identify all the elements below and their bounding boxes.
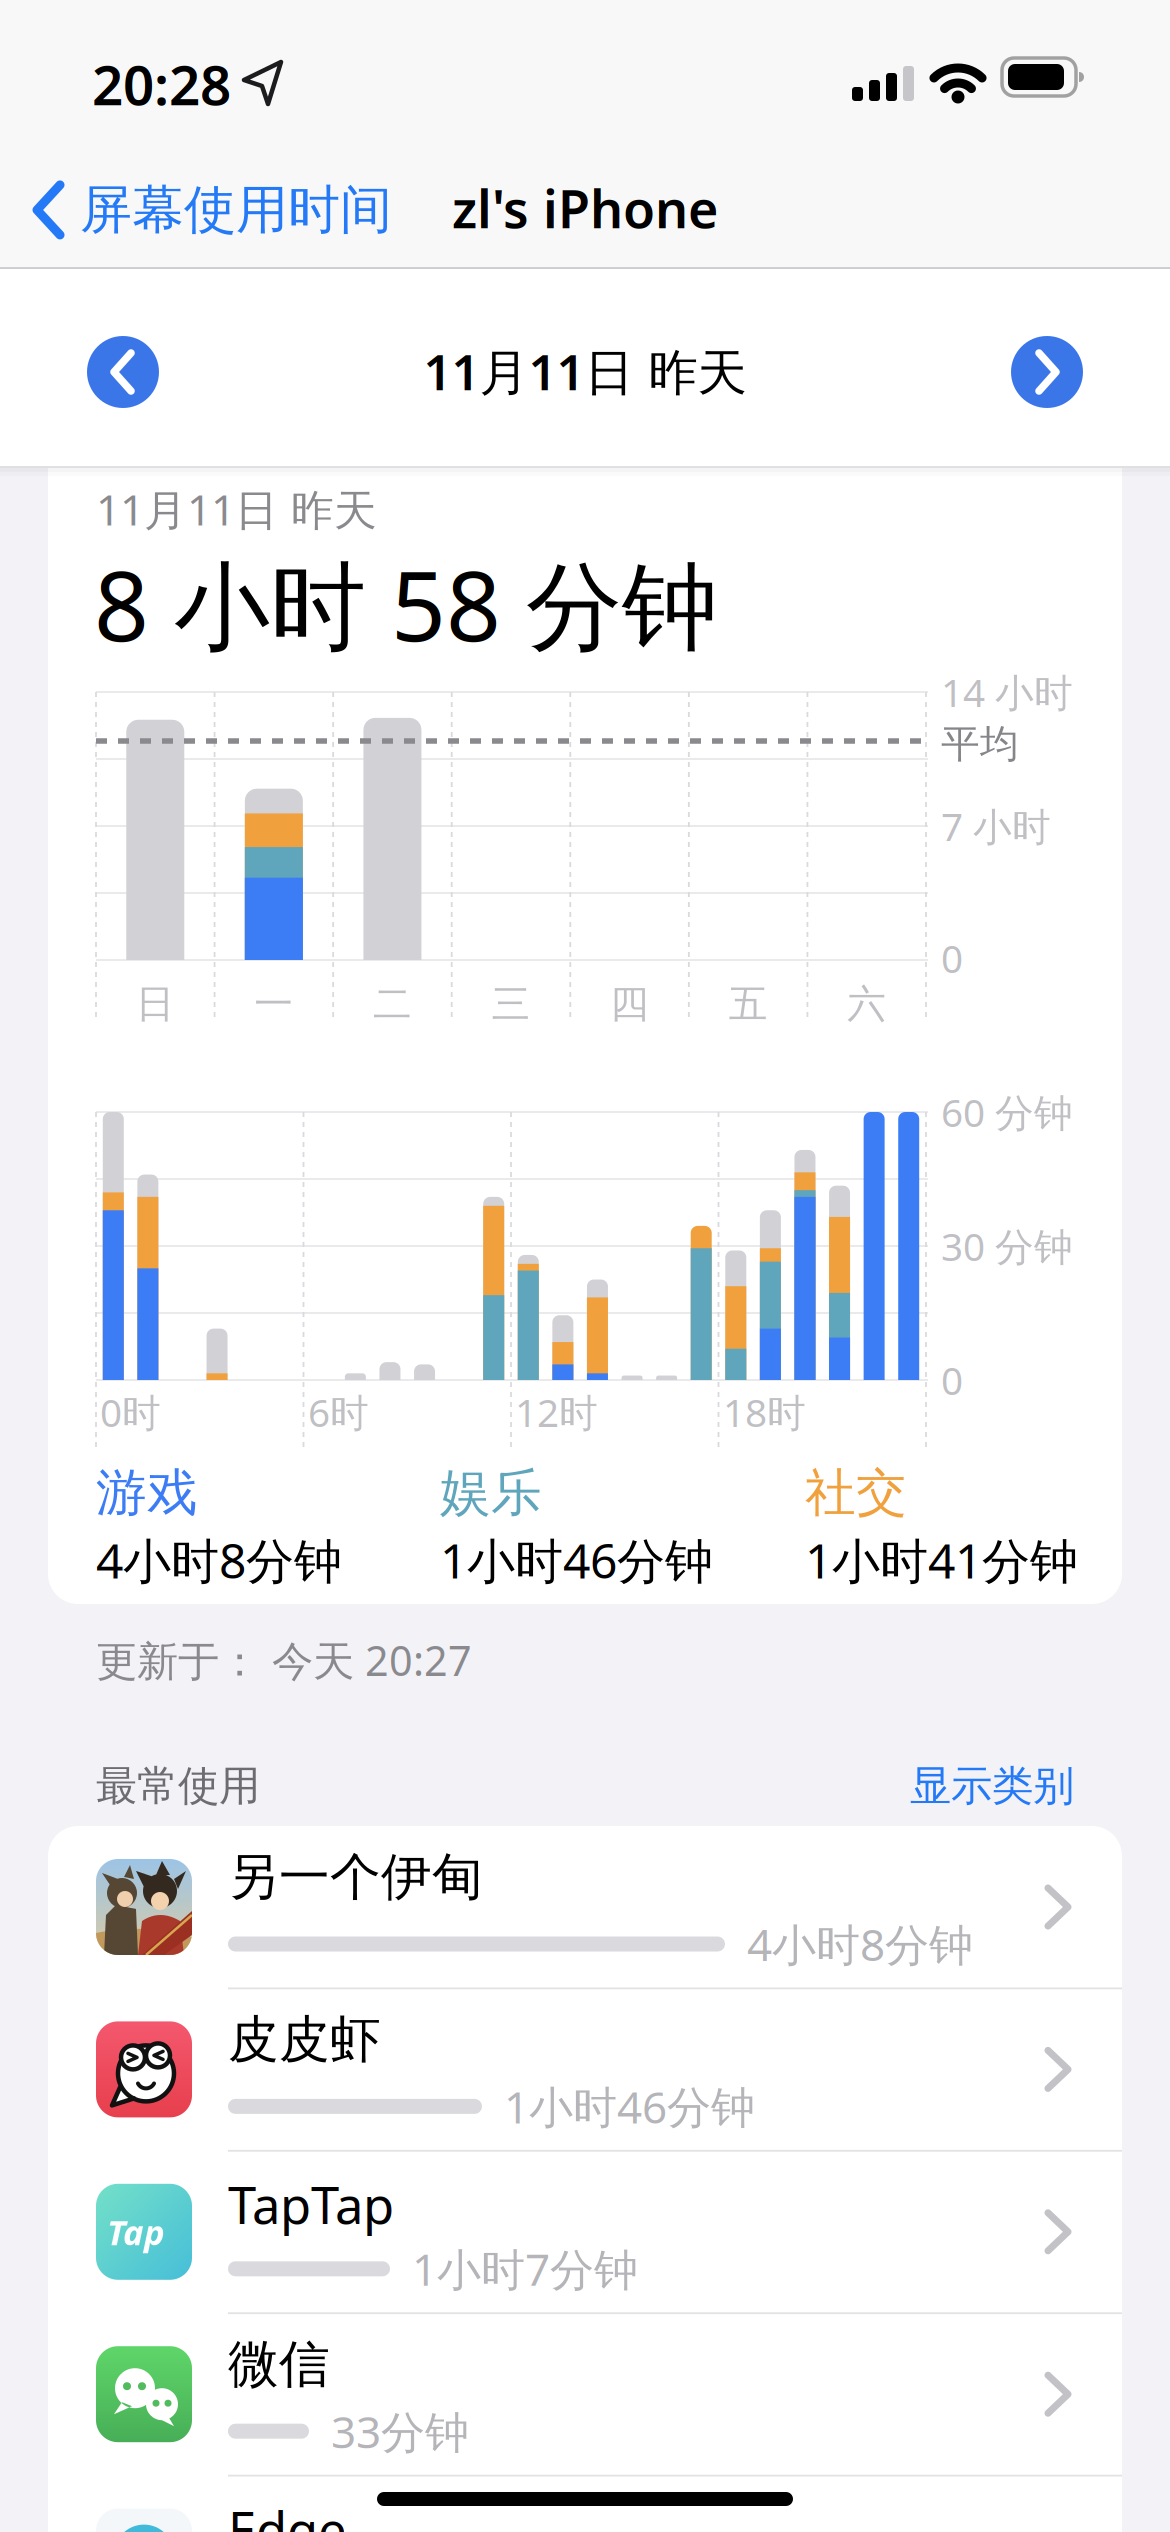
button[interactable]: 微信 <box>48 2313 1122 2475</box>
staticText: 一 <box>254 980 293 1028</box>
staticText: 1小时46分钟 <box>440 1528 713 1592</box>
staticText: 1小时41分钟 <box>805 1528 1078 1592</box>
staticText: zl's iPhone <box>452 173 718 243</box>
staticText: 另一个伊甸 <box>228 1846 483 1908</box>
staticText: 60 分钟 <box>941 1086 1073 1138</box>
staticText: 11月11日 昨天 <box>96 481 377 537</box>
staticText: 20:28 <box>92 48 231 120</box>
staticText: 五 <box>729 980 768 1028</box>
staticText: 四 <box>610 980 649 1028</box>
staticText: 14 小时 <box>941 666 1073 718</box>
staticText: 三 <box>491 980 530 1028</box>
button[interactable]: Edge <box>48 2476 1122 2532</box>
staticText: 0时 <box>100 1386 161 1438</box>
staticText: 4小时8分钟 <box>747 1915 973 1973</box>
staticText: 平均 <box>941 720 1019 768</box>
button[interactable]: 前一天 <box>87 336 159 408</box>
staticText: Edge <box>228 2496 347 2532</box>
button[interactable]: 屏幕使用时间 <box>32 178 392 242</box>
staticText: 4小时8分钟 <box>96 1528 342 1592</box>
staticText: 7 小时 <box>941 800 1051 852</box>
staticText: 11月11日 昨天 <box>423 338 746 404</box>
button[interactable]: Tap <box>48 2151 1122 2313</box>
staticText: 显示类别 <box>910 1761 1074 1811</box>
button[interactable]: 另一个伊甸 <box>48 1826 1122 1988</box>
staticText: Tap <box>107 2209 165 2255</box>
staticText: 六 <box>847 980 886 1028</box>
button[interactable]: 显示类别 <box>910 1761 1074 1811</box>
staticText: TapTap <box>228 2171 394 2238</box>
staticText: 日 <box>136 980 175 1028</box>
staticText: 二 <box>373 980 412 1028</box>
staticText: 1小时7分钟 <box>412 2240 638 2298</box>
staticText: 社交 <box>805 1462 907 1524</box>
staticText: 18时 <box>723 1386 806 1438</box>
button[interactable]: 后一天 <box>1011 336 1083 408</box>
staticText: 最常使用 <box>96 1761 260 1811</box>
staticText: 更新于： 今天 20:27 <box>96 1633 472 1687</box>
staticText: 屏幕使用时间 <box>80 178 392 242</box>
staticText: 娱乐 <box>440 1462 542 1524</box>
button[interactable]: 皮皮虾 <box>48 1988 1122 2150</box>
staticText: 0 <box>941 932 963 984</box>
staticText: 0 <box>941 1354 963 1406</box>
staticText: 33分钟 <box>331 2402 469 2460</box>
staticText: 6时 <box>308 1386 369 1438</box>
staticText: 12时 <box>515 1386 598 1438</box>
staticText: 30 分钟 <box>941 1220 1073 1272</box>
staticText: 游戏 <box>96 1462 198 1524</box>
staticText: 微信 <box>228 2333 330 2395</box>
staticText: 8 小时 58 分钟 <box>94 540 718 668</box>
staticText: 皮皮虾 <box>228 2008 381 2071</box>
staticText: 1小时46分钟 <box>504 2077 755 2136</box>
